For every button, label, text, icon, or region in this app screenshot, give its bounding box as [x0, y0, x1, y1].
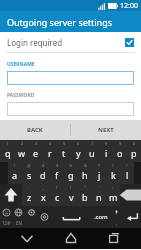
staticText: _ [42, 185, 44, 190]
button[interactable]: ( [50, 184, 64, 206]
other: Login required checkbox [125, 38, 134, 47]
button[interactable]: ' [92, 184, 106, 206]
button[interactable]: ) [64, 184, 78, 206]
staticText: q [5, 147, 11, 159]
button[interactable]: .com [92, 206, 110, 228]
button[interactable]: $ [50, 162, 64, 184]
staticText: j [98, 169, 101, 181]
button[interactable]: / [120, 162, 134, 184]
staticText: d [40, 169, 46, 181]
staticText: & [84, 163, 87, 168]
staticText: PASSWORD [7, 92, 35, 99]
button[interactable]: NEXT [71, 120, 141, 140]
button[interactable] [7, 102, 134, 116]
button[interactable]: # [36, 162, 50, 184]
button[interactable]: 1 [0, 140, 15, 162]
staticText: v [69, 191, 74, 203]
staticText: Outgoing server settings [7, 16, 113, 28]
staticText: y [76, 147, 81, 159]
button[interactable]: 3 [29, 140, 43, 162]
staticText: r [48, 147, 52, 159]
staticText: ? [112, 163, 114, 168]
button[interactable]: 2 [15, 140, 29, 162]
button[interactable]: Space [51, 206, 92, 228]
button[interactable]: 7 [85, 140, 99, 162]
staticText: - [28, 185, 30, 190]
staticText: BACK [27, 126, 43, 134]
button[interactable]: Outgoing server settings [0, 11, 141, 32]
button[interactable]: Settings [25, 206, 38, 228]
button[interactable]: Symbols [0, 206, 12, 228]
staticText: b [82, 191, 88, 203]
staticText: i [105, 147, 108, 159]
staticText: " [84, 185, 86, 190]
button[interactable]: - [22, 184, 36, 206]
staticText: t [62, 147, 66, 159]
staticText: w [18, 147, 26, 159]
staticText: k [111, 169, 116, 181]
staticText: e [33, 147, 39, 159]
staticText: @ [27, 163, 31, 168]
button[interactable]: 6 [71, 140, 85, 162]
button[interactable]: Enter [123, 206, 141, 228]
button[interactable]: 0 [127, 140, 141, 162]
button[interactable]: Backspace [120, 184, 141, 206]
staticText: .com [94, 213, 108, 221]
staticText: ' [99, 185, 100, 190]
staticText: * [98, 163, 101, 168]
staticText: 0 [133, 141, 136, 146]
button[interactable]: At sign [38, 206, 51, 228]
staticText: ) [70, 185, 72, 190]
staticText: u [89, 147, 95, 159]
button[interactable]: Home [54, 228, 88, 249]
staticText: n [96, 191, 102, 203]
button[interactable]: : [106, 184, 120, 206]
staticText: Login required [7, 37, 63, 48]
button[interactable]: Shift [0, 184, 22, 206]
staticText: 3 [35, 141, 38, 146]
staticText: 12# [2, 220, 11, 226]
button[interactable]: @ [22, 162, 36, 184]
staticText: g [68, 169, 74, 181]
staticText: p [131, 147, 137, 159]
staticText: EN [16, 220, 22, 226]
button[interactable]: Language [12, 206, 25, 228]
staticText: m [109, 191, 118, 203]
button[interactable]: Recent apps [97, 228, 131, 249]
button[interactable]: ! [8, 162, 22, 184]
staticText: / [126, 163, 128, 168]
button[interactable]: 4 [43, 140, 57, 162]
staticText: # [42, 163, 45, 168]
staticText: 6 [77, 141, 80, 146]
button[interactable]: 8 [99, 140, 113, 162]
button[interactable]: & [78, 162, 92, 184]
staticText: a [12, 169, 18, 181]
staticText: 12:00 [120, 1, 138, 11]
button[interactable]: 5 [57, 140, 71, 162]
button[interactable] [7, 71, 134, 85]
staticText: 4 [49, 141, 52, 146]
button[interactable]: * [92, 162, 106, 184]
staticText: z [27, 191, 32, 203]
button[interactable]: % [64, 162, 78, 184]
staticText: NEXT [98, 126, 114, 134]
staticText: USERNAME [7, 61, 35, 68]
staticText: $ [56, 163, 59, 168]
button[interactable]: Back [10, 228, 44, 249]
staticText: : [112, 185, 114, 190]
staticText: 8 [105, 141, 108, 146]
staticText: ( [56, 185, 58, 190]
staticText: l [126, 169, 129, 181]
button[interactable]: 9 [113, 140, 127, 162]
staticText: c [55, 191, 60, 203]
button[interactable]: ? [106, 162, 120, 184]
button[interactable]: " [78, 184, 92, 206]
button[interactable]: Voice input [110, 206, 123, 228]
staticText: , [116, 220, 118, 226]
staticText: 1 [6, 141, 9, 146]
button[interactable]: Login required [0, 32, 141, 52]
staticText: o [117, 147, 123, 159]
staticText: f [55, 169, 59, 181]
button[interactable]: _ [36, 184, 50, 206]
button[interactable]: BACK [0, 120, 70, 140]
